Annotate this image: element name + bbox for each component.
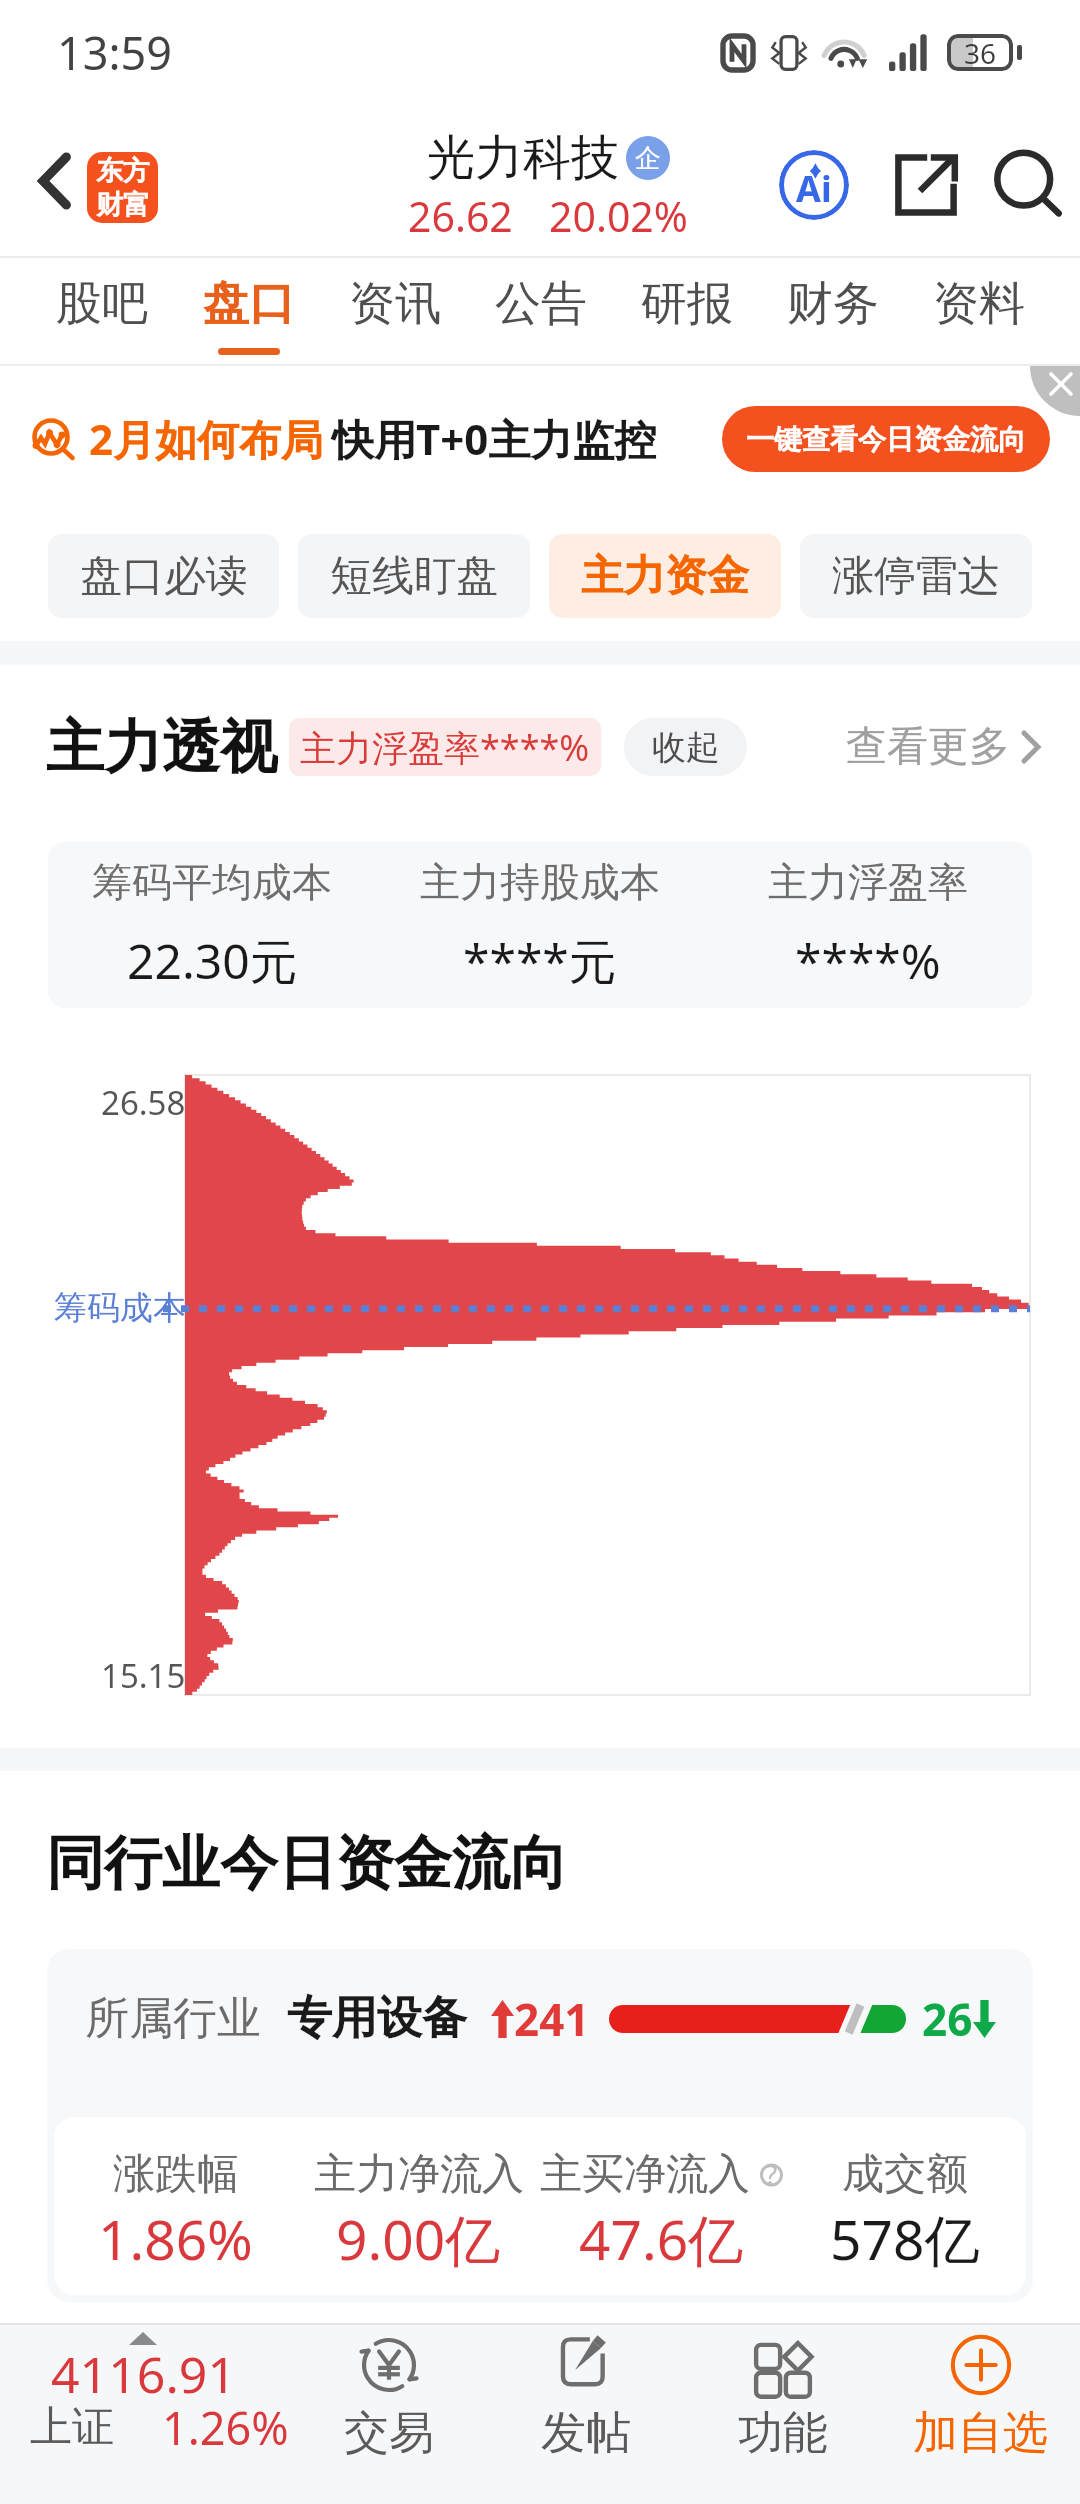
staticText: 主力净流入: [314, 2148, 524, 2201]
button[interactable]: 股吧: [28, 258, 175, 366]
button[interactable]: 交易: [290, 2325, 487, 2504]
staticText: 资讯: [349, 275, 441, 333]
button[interactable]: 主力浮盈率****%: [289, 718, 601, 776]
button[interactable]: Back: [0, 121, 110, 241]
staticText: 财务: [787, 275, 879, 333]
staticText: 9.00亿: [336, 2201, 501, 2276]
button[interactable]: 所属行业: [85, 1949, 996, 2088]
staticText: 研报: [641, 275, 733, 333]
staticText: 短线盯盘: [330, 550, 498, 603]
staticText: 加自选: [913, 2405, 1048, 2462]
staticText: 主买净流入: [540, 2148, 750, 2201]
staticText: 47.6亿: [579, 2201, 744, 2276]
staticText: 1.26%: [162, 2397, 289, 2458]
button[interactable]: 收起: [624, 718, 747, 776]
staticText: 26.62: [408, 188, 513, 244]
button[interactable]: Search: [978, 125, 1080, 245]
staticText: 查看更多: [846, 721, 1010, 773]
staticText: 36: [964, 34, 997, 71]
staticText: 22.30元: [127, 928, 298, 994]
button[interactable]: Close banner: [1030, 366, 1080, 416]
button[interactable]: 功能: [684, 2325, 881, 2504]
button[interactable]: 加自选: [881, 2325, 1080, 2504]
staticText: 光力科技: [427, 128, 619, 188]
button[interactable]: 盘口必读: [48, 534, 279, 618]
staticText: 专用设备: [287, 1990, 467, 2047]
button[interactable]: 一键查看今日资金流向: [722, 406, 1050, 472]
staticText: 成交额: [842, 2148, 968, 2201]
staticText: 盘口必读: [80, 550, 248, 603]
staticText: 股吧: [56, 275, 148, 333]
button[interactable]: Help: [760, 2155, 783, 2195]
staticText: 涨跌幅: [113, 2148, 239, 2201]
button[interactable]: 主力资金: [549, 534, 781, 618]
button[interactable]: 公告: [468, 258, 614, 366]
button[interactable]: 研报: [614, 258, 760, 366]
staticText: 一键查看今日资金流向: [746, 422, 1026, 457]
staticText: 主力浮盈率****%: [300, 723, 590, 772]
button[interactable]: 资料: [906, 258, 1052, 366]
button[interactable]: 短线盯盘: [298, 534, 530, 618]
staticText: 主力浮盈率: [768, 857, 968, 907]
staticText: 上证: [30, 2401, 114, 2454]
staticText: 所属行业: [85, 1991, 261, 2046]
button[interactable]: 查看更多: [846, 721, 1040, 773]
staticText: 26: [922, 1989, 973, 2049]
staticText: 快用T+0主力监控: [332, 410, 657, 467]
staticText: 发帖: [541, 2405, 631, 2462]
staticText: 13:59: [57, 22, 173, 83]
staticText: 筹码平均成本: [92, 857, 332, 907]
staticText: 涨停雷达: [832, 550, 1000, 603]
staticText: 同行业今日资金流向: [46, 1827, 568, 1900]
staticText: 4116.91: [51, 2340, 236, 2408]
staticText: 资料: [933, 275, 1025, 333]
staticText: 筹码成本: [54, 1287, 186, 1329]
button[interactable]: 涨停雷达: [800, 534, 1032, 618]
button[interactable]: Share: [873, 125, 978, 245]
staticText: 盘口: [203, 275, 295, 333]
staticText: 功能: [738, 2405, 828, 2462]
staticText: Ai: [796, 164, 832, 213]
staticText: 20.02%: [549, 188, 688, 244]
button[interactable]: 4116.91: [0, 2325, 290, 2504]
staticText: 578亿: [830, 2201, 980, 2276]
staticText: 241: [514, 1989, 590, 2049]
staticText: 东方: [96, 154, 150, 188]
staticText: 主力持股成本: [420, 857, 660, 907]
staticText: 1.86%: [98, 2201, 253, 2276]
staticText: ****元: [463, 928, 617, 994]
staticText: 公告: [495, 275, 587, 333]
staticText: 26.58: [101, 1080, 186, 1125]
staticText: 企: [635, 142, 661, 175]
button[interactable]: 资讯: [322, 258, 468, 366]
button[interactable]: 财务: [760, 258, 906, 366]
staticText: ?: [765, 2155, 778, 2193]
button[interactable]: 发帖: [487, 2325, 684, 2504]
button[interactable]: 盘口: [175, 258, 322, 366]
staticText: 交易: [344, 2405, 434, 2462]
staticText: 2月如何布局: [89, 410, 324, 467]
staticText: 主力资金: [581, 550, 749, 603]
staticText: 15.15: [101, 1653, 186, 1698]
button[interactable]: East Money: [87, 152, 158, 223]
staticText: ****%: [795, 928, 941, 993]
staticText: 财富: [96, 188, 150, 222]
button[interactable]: AI assistant: [755, 125, 873, 245]
staticText: 主力透视: [46, 711, 278, 783]
staticText: 收起: [652, 726, 720, 769]
